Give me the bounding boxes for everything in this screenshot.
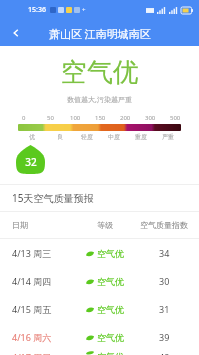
staticText: 空气优	[97, 332, 124, 343]
staticText: 4/16 周六	[12, 331, 52, 343]
staticText: 空气优	[97, 351, 124, 355]
staticText: 数值越大,污染越严重	[67, 95, 132, 105]
button[interactable]: 4/15 周五	[0, 295, 199, 323]
staticText: +	[82, 6, 86, 14]
staticText: 萧山区 江南明城南区	[49, 26, 151, 41]
staticText: 34	[159, 247, 170, 259]
staticText: 15:36	[28, 5, 46, 15]
staticText: 空气优	[97, 248, 124, 259]
staticText: 良	[57, 133, 63, 141]
staticText: 48	[159, 351, 170, 355]
staticText: 等级	[97, 220, 113, 230]
staticText: 空气优	[61, 56, 139, 89]
staticText: 空气优	[97, 276, 124, 287]
button[interactable]: 4/17 周日	[0, 351, 199, 355]
staticText: 中度	[108, 133, 120, 141]
button[interactable]: 4/14 周四	[0, 267, 199, 295]
button[interactable]: 4/13 周三	[0, 239, 199, 267]
staticText: 日期	[12, 220, 28, 230]
staticText: 100	[70, 114, 81, 122]
staticText: 空气质量指数	[140, 220, 188, 230]
staticText: 39	[159, 331, 170, 343]
staticText: 4/14 周四	[12, 275, 52, 287]
staticText: 200	[120, 114, 131, 122]
staticText: 空气优	[97, 304, 124, 315]
staticText: 150	[95, 114, 106, 122]
staticText: 优	[29, 133, 35, 141]
staticText: 0	[22, 114, 26, 122]
staticText: 31	[159, 303, 170, 315]
staticText: 4/15 周五	[12, 303, 52, 315]
staticText: 15天空气质量预报	[12, 191, 94, 205]
staticText: 300	[145, 114, 156, 122]
button[interactable]: Back	[4, 21, 28, 45]
staticText: 严重	[162, 133, 174, 141]
button[interactable]: 4/16 周六	[0, 323, 199, 351]
staticText: 30	[159, 275, 170, 287]
staticText: 重度	[135, 133, 147, 141]
staticText: 32	[25, 155, 37, 169]
staticText: 轻度	[81, 133, 93, 141]
staticText: 4/17 周日	[12, 351, 52, 355]
staticText: 4/13 周三	[12, 247, 52, 259]
staticText: 50	[47, 114, 54, 122]
staticText: 500	[170, 114, 181, 122]
